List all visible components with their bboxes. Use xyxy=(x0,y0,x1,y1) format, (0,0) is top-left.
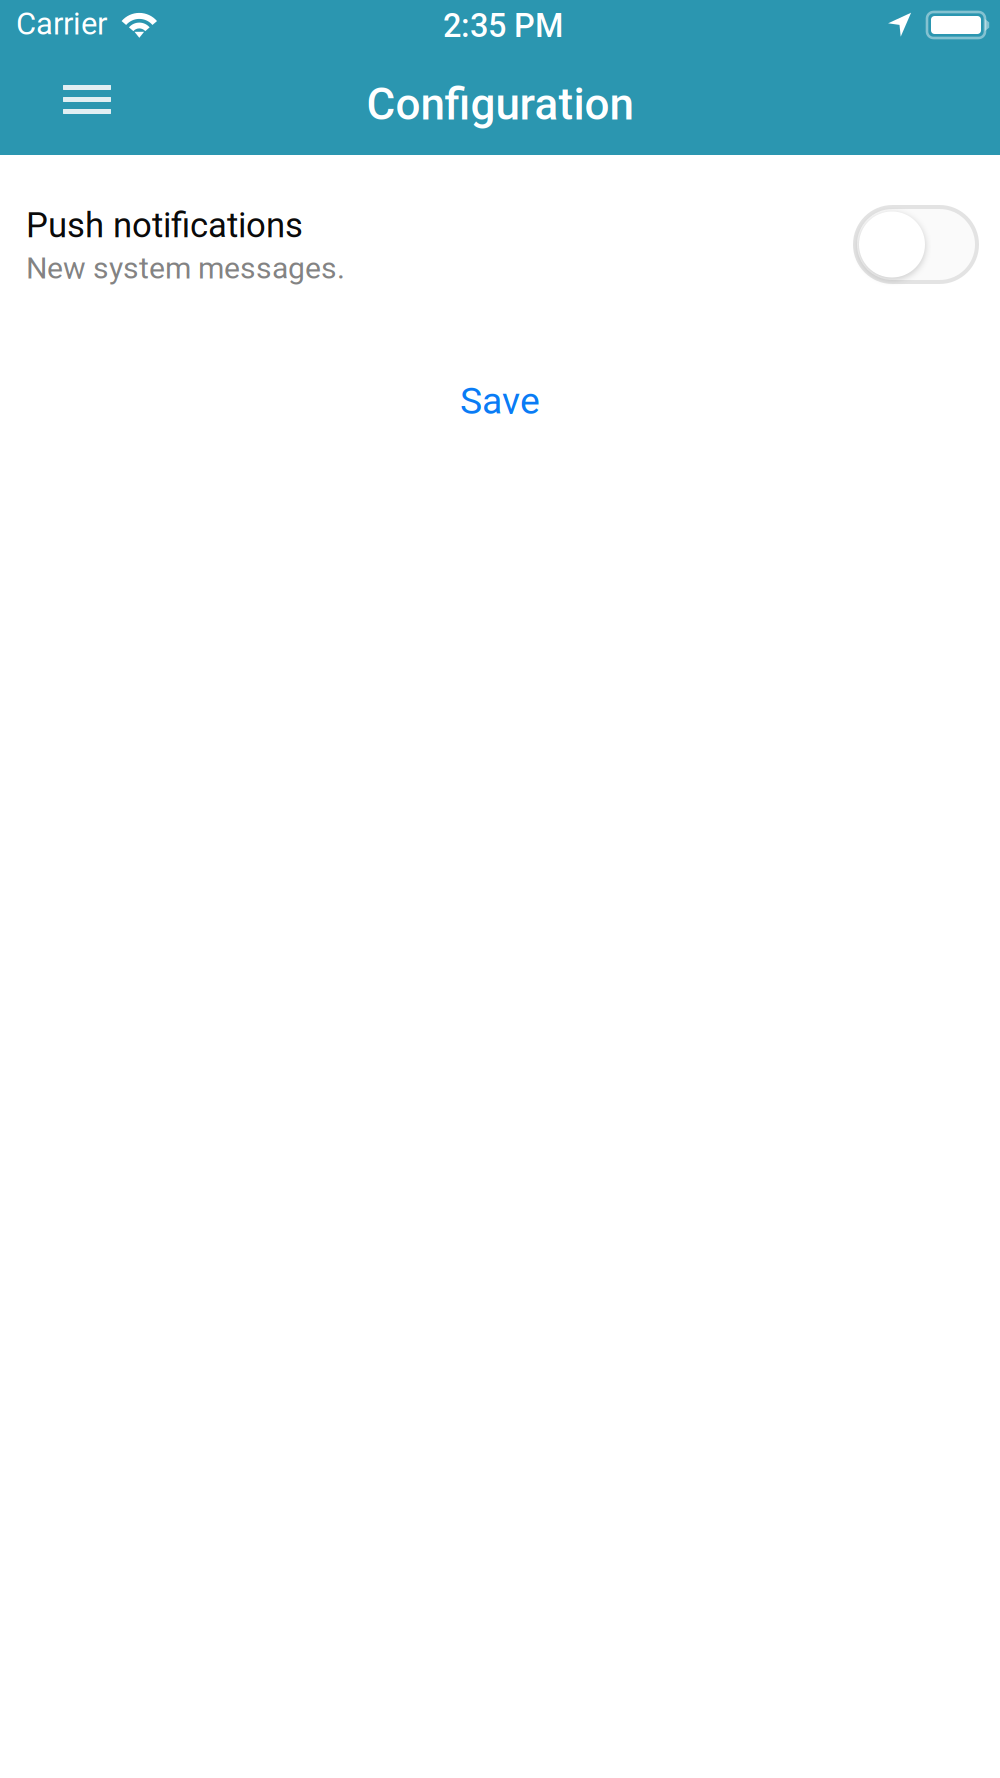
staticText: Carrier xyxy=(16,6,107,42)
staticText: 2:35 PM xyxy=(443,7,563,45)
staticText: Configuration xyxy=(366,79,633,130)
staticText: Save xyxy=(460,379,540,423)
staticText: New system messages. xyxy=(26,251,345,286)
button[interactable]: Save xyxy=(0,365,1000,437)
button[interactable]: Push notifications xyxy=(845,197,987,292)
button[interactable]: Menu xyxy=(42,70,132,128)
staticText: Push notifications xyxy=(26,205,303,246)
